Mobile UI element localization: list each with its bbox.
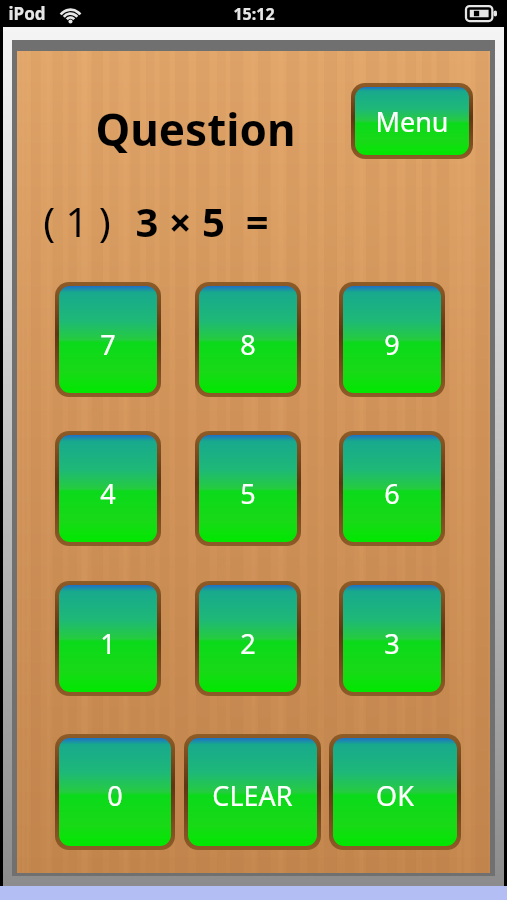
staticText: CLEAR	[212, 777, 293, 814]
button[interactable]: CLEAR	[184, 734, 321, 850]
staticText: ( 1 )	[43, 194, 111, 248]
staticText: iPod	[8, 2, 46, 25]
staticText: 0	[107, 777, 123, 814]
staticText: OK	[376, 777, 414, 814]
staticText: Menu	[375, 103, 449, 140]
button[interactable]: 1	[55, 581, 161, 696]
other: Wi-Fi signal	[59, 6, 82, 23]
button[interactable]: Menu	[351, 83, 473, 159]
button[interactable]: 6	[339, 431, 445, 546]
staticText: 6	[384, 475, 400, 512]
button[interactable]: 0	[55, 734, 175, 850]
button[interactable]: 2	[195, 581, 301, 696]
button[interactable]: 3	[339, 581, 445, 696]
staticText: 5	[240, 475, 256, 512]
button[interactable]: 4	[55, 431, 161, 546]
staticText: Question	[95, 99, 296, 159]
other: Battery	[466, 6, 497, 21]
staticText: 8	[240, 326, 256, 363]
staticText: 9	[384, 326, 400, 363]
button[interactable]: OK	[329, 734, 461, 850]
staticText: 3	[384, 625, 400, 662]
staticText: 15:12	[233, 3, 275, 25]
staticText: 7	[100, 326, 116, 363]
button[interactable]: 5	[195, 431, 301, 546]
staticText: 1	[100, 625, 116, 662]
button[interactable]: 7	[55, 282, 161, 397]
button[interactable]: 8	[195, 282, 301, 397]
button[interactable]: 9	[339, 282, 445, 397]
staticText: 3 × 5 =	[135, 194, 269, 248]
staticText: 2	[240, 625, 256, 662]
staticText: 4	[100, 475, 116, 512]
